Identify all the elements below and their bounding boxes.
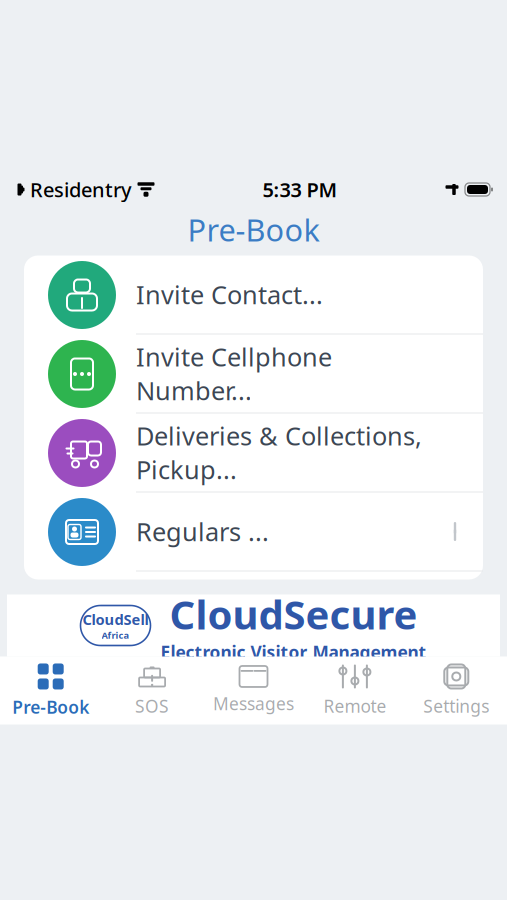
staticText: Residentry — [30, 176, 132, 203]
staticText: Deliveries & Collections, Pickup... — [136, 419, 422, 486]
staticText: SOS — [135, 694, 169, 717]
button[interactable]: Invite Contact... — [24, 255, 483, 334]
staticText: Messages — [213, 692, 294, 715]
button[interactable]: Invite Cellphone Number... — [24, 334, 483, 413]
button[interactable]: Settings — [406, 659, 507, 721]
staticText: 5:33 PM — [262, 176, 337, 203]
staticText: Remote — [323, 694, 386, 717]
staticText: Pre-Book — [187, 209, 319, 250]
button[interactable]: Deliveries & Collections, Pickup... — [24, 413, 483, 492]
staticText: Pre-Book — [12, 695, 89, 718]
button[interactable]: Messages — [203, 659, 304, 721]
button[interactable]: SOS — [101, 659, 203, 721]
staticText: Invite Cellphone Number... — [136, 340, 332, 407]
staticText: Regulars ... — [136, 515, 269, 548]
button[interactable]: Pre-Book — [0, 659, 101, 721]
staticText: Africa — [101, 629, 129, 641]
staticText: Electronic Visitor Management — [160, 641, 426, 664]
staticText: CloudSecure — [169, 587, 417, 640]
staticText: CloudSell — [82, 610, 148, 629]
staticText: Settings — [423, 694, 489, 717]
button[interactable]: Remote — [304, 659, 406, 721]
button[interactable]: Regulars ... — [24, 492, 483, 571]
staticText: Invite Contact... — [136, 278, 323, 311]
